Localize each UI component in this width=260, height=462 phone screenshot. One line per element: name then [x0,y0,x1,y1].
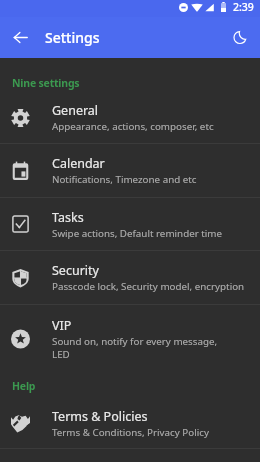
button[interactable]: Tasks [0,198,260,250]
button[interactable]: VIP [0,305,260,373]
staticText: Tasks [52,209,84,226]
button[interactable]: Security [0,251,260,304]
staticText: Calendar [52,155,105,172]
staticText: 2:39 [233,0,254,14]
staticText: Sound on, notify for every message, LED [52,335,218,361]
staticText: Security [52,262,99,279]
button[interactable]: Terms & Policies [0,399,260,448]
staticText: Help [12,379,36,393]
staticText: Swipe actions, Default reminder time [52,227,223,240]
staticText: Appearance, actions, composer, etc [52,120,214,133]
staticText: Settings [45,28,100,47]
staticText: Terms & Policies [52,408,148,425]
staticText: Passcode lock, Security model, encryptio… [52,280,245,293]
staticText: Notifications, Timezone and etc [52,173,197,186]
staticText: Nine settings [12,76,80,90]
button[interactable]: General [0,92,260,143]
staticText: General [52,102,99,119]
button[interactable]: Calendar [0,144,260,197]
staticText: Terms & Conditions, Privacy Policy [52,426,209,439]
button[interactable]: Back [0,17,40,58]
staticText: VIP [52,317,72,334]
button[interactable]: Dark mode [220,17,260,58]
